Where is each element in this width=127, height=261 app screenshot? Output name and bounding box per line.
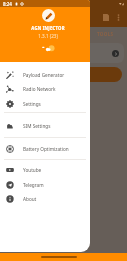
staticText: SIM Settings bbox=[23, 123, 51, 129]
staticText: Payload Generator bbox=[23, 72, 65, 78]
button[interactable]: Settings bbox=[0, 96, 90, 111]
staticText: Battery Optimization bbox=[23, 146, 69, 152]
staticText: About bbox=[23, 196, 37, 202]
staticText: 1.3.1 (23) bbox=[38, 33, 58, 39]
button[interactable]: About bbox=[0, 191, 90, 206]
staticText: 8:24 bbox=[3, 1, 12, 7]
button[interactable] bbox=[5, 43, 124, 63]
staticText: Settings bbox=[23, 101, 41, 107]
button[interactable]: Youtube bbox=[0, 162, 90, 177]
button[interactable]: Battery Optimization bbox=[0, 141, 90, 156]
staticText: AGN INJECTOR bbox=[31, 25, 65, 31]
button[interactable]: Telegram bbox=[0, 177, 90, 192]
staticText: Radio Network bbox=[23, 86, 56, 92]
button[interactable]: Payload Generator bbox=[0, 67, 90, 82]
button[interactable] bbox=[5, 67, 122, 82]
staticText: Telegram bbox=[23, 182, 44, 188]
button[interactable]: Radio Network bbox=[0, 81, 90, 96]
button[interactable]: Save configuration bbox=[99, 11, 112, 24]
button[interactable]: More options bbox=[112, 11, 125, 24]
button[interactable]: SIM Settings bbox=[0, 118, 90, 133]
staticText: TOOLS bbox=[97, 31, 114, 37]
staticText: Youtube bbox=[23, 167, 42, 173]
